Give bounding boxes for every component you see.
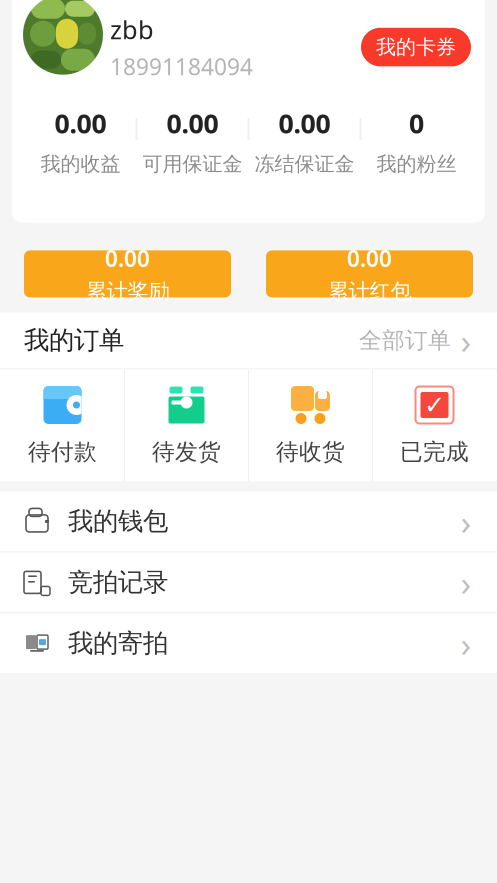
button[interactable]: 0.00 bbox=[24, 250, 231, 297]
button[interactable]: 我的订单 bbox=[0, 312, 497, 368]
staticText: 全部订单 bbox=[359, 326, 451, 354]
button[interactable]: 我的钱包 bbox=[0, 491, 497, 551]
staticText: 我的收益 bbox=[40, 152, 120, 176]
staticText: zbb bbox=[110, 13, 154, 46]
staticText: 可用保证金 bbox=[142, 152, 242, 176]
staticText: 18991184094 bbox=[110, 51, 253, 81]
staticText: 冻结保证金 bbox=[254, 152, 354, 176]
staticText: 累计奖励 bbox=[85, 278, 169, 305]
staticText: 0.00 bbox=[278, 105, 330, 141]
button[interactable]: ✓ bbox=[373, 369, 496, 481]
staticText: 竞拍记录 bbox=[68, 567, 168, 598]
button[interactable]: 我的寄拍 bbox=[0, 613, 497, 673]
staticText: 0.00 bbox=[54, 105, 106, 141]
staticText: ✓ bbox=[424, 391, 445, 419]
staticText: › bbox=[460, 620, 471, 666]
staticText: 我的订单 bbox=[24, 325, 124, 356]
staticText: › bbox=[460, 498, 471, 544]
staticText: › bbox=[460, 317, 471, 363]
button[interactable]: 待收货 bbox=[249, 369, 372, 481]
button[interactable]: 我的卡券 bbox=[361, 28, 471, 66]
staticText: 已完成 bbox=[400, 438, 469, 466]
staticText: 待付款 bbox=[28, 438, 97, 466]
staticText: 我的卡券 bbox=[376, 35, 456, 59]
staticText: 0.00 bbox=[166, 105, 218, 141]
staticText: 我的钱包 bbox=[68, 506, 168, 537]
staticText: 待收货 bbox=[276, 438, 345, 466]
staticText: 待发货 bbox=[152, 438, 221, 466]
button[interactable]: 待发货 bbox=[125, 369, 248, 481]
staticText: 累计红包 bbox=[327, 278, 411, 305]
staticText: 0 bbox=[409, 105, 424, 141]
staticText: 我的粉丝 bbox=[376, 152, 456, 176]
button[interactable]: 待付款 bbox=[1, 369, 124, 481]
button[interactable]: 0.00 bbox=[266, 250, 473, 297]
staticText: 0.00 bbox=[347, 243, 392, 273]
button[interactable]: 竞拍记录 bbox=[0, 552, 497, 612]
staticText: › bbox=[460, 559, 471, 605]
staticText: 我的寄拍 bbox=[68, 628, 168, 659]
staticText: 0.00 bbox=[105, 243, 150, 273]
